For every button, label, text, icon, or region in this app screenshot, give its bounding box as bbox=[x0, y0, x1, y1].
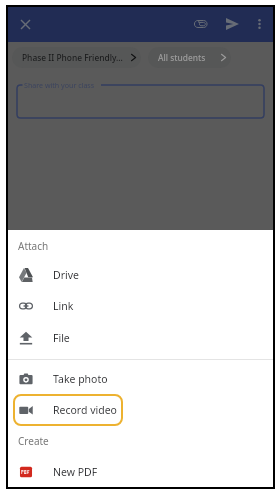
staticText: Drive bbox=[53, 268, 79, 282]
button[interactable]: Attach file bbox=[186, 9, 216, 39]
button[interactable]: Record video bbox=[8, 394, 273, 426]
button[interactable]: Take photo bbox=[8, 363, 273, 395]
staticText: Attach bbox=[18, 239, 49, 253]
staticText: Phase II Phone Friendly… bbox=[22, 52, 123, 63]
button[interactable]: Close bbox=[10, 9, 40, 39]
staticText: Create bbox=[18, 434, 49, 448]
staticText: New PDF bbox=[53, 465, 98, 479]
staticText: Share with your class bbox=[24, 80, 95, 90]
button[interactable]: New PDF bbox=[8, 456, 273, 488]
staticText: Record video bbox=[53, 403, 117, 417]
button[interactable]: All students bbox=[148, 47, 231, 68]
staticText: Take photo bbox=[53, 372, 108, 386]
staticText: Link bbox=[53, 299, 74, 313]
button[interactable]: Drive bbox=[8, 259, 273, 291]
staticText: All students bbox=[158, 52, 206, 63]
button[interactable]: Send bbox=[217, 9, 247, 39]
button[interactable]: More options bbox=[244, 9, 274, 39]
staticText: File bbox=[53, 331, 70, 345]
button[interactable]: Phase II Phone Friendly… bbox=[12, 47, 141, 68]
button[interactable]: File bbox=[8, 322, 273, 354]
button[interactable]: Link bbox=[8, 290, 273, 322]
